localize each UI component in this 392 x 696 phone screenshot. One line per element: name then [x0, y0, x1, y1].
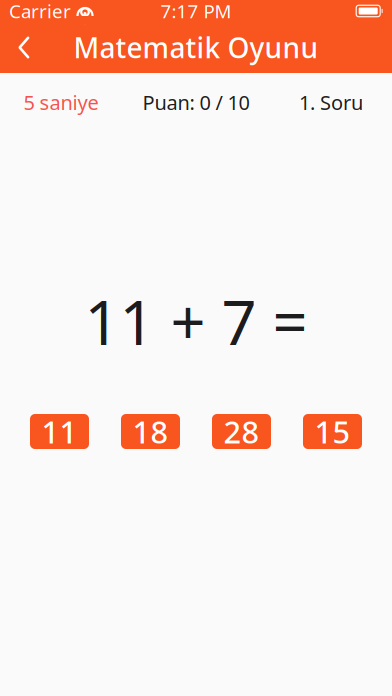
button[interactable]: 18 — [121, 414, 180, 449]
staticText: 18 — [132, 411, 168, 452]
staticText: Puan: 0 / 10 — [142, 89, 249, 116]
button[interactable]: 15 — [303, 414, 362, 449]
button[interactable]: 28 — [212, 414, 271, 449]
staticText: 11 + 7 = — [84, 281, 307, 362]
staticText: Matematik Oyunu — [73, 29, 318, 66]
staticText: Carrier — [9, 0, 71, 23]
staticText: 7:17 PM — [160, 0, 231, 23]
button[interactable]: Back — [2, 25, 46, 69]
staticText: 28 — [223, 411, 259, 452]
staticText: 5 saniye — [23, 89, 98, 116]
staticText: 1. Soru — [299, 89, 363, 116]
staticText: 11 — [41, 411, 77, 452]
button[interactable]: 11 — [30, 414, 89, 449]
staticText: 15 — [314, 411, 350, 452]
